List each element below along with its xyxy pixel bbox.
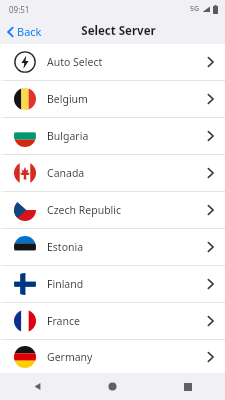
- other: Open France: [207, 315, 214, 327]
- button[interactable]: Back: [0, 373, 75, 400]
- button[interactable]: Home: [75, 373, 150, 400]
- other: Open Czech Republic: [207, 204, 214, 216]
- staticText: Canada: [47, 166, 207, 180]
- staticText: Belgium: [47, 92, 207, 106]
- staticText: Estonia: [47, 240, 207, 254]
- staticText: France: [47, 314, 207, 328]
- other: Open Bulgaria: [207, 130, 214, 142]
- other: Open Finland: [207, 278, 214, 290]
- other: Open Germany: [207, 351, 214, 363]
- button[interactable]: Recent apps: [150, 373, 225, 400]
- button[interactable]: Auto Select: [0, 44, 225, 80]
- other: Open Canada: [207, 167, 214, 179]
- staticText: Select Server: [81, 23, 156, 39]
- button[interactable]: Czech Republic: [0, 192, 225, 228]
- button[interactable]: Back: [0, 21, 48, 42]
- button[interactable]: France: [0, 303, 225, 339]
- staticText: Auto Select: [47, 55, 207, 69]
- staticText: Czech Republic: [47, 203, 207, 217]
- staticText: 5G: [190, 4, 200, 14]
- button[interactable]: Estonia: [0, 229, 225, 265]
- other: Open Auto Select: [207, 56, 214, 68]
- other: Open Belgium: [207, 93, 214, 105]
- staticText: Germany: [47, 350, 207, 364]
- staticText: 09:51: [9, 4, 30, 15]
- other: Open Estonia: [207, 241, 214, 253]
- staticText: Back: [17, 24, 42, 39]
- button[interactable]: Canada: [0, 155, 225, 191]
- button[interactable]: Bulgaria: [0, 118, 225, 154]
- button[interactable]: Belgium: [0, 81, 225, 117]
- button[interactable]: Finland: [0, 266, 225, 302]
- staticText: Bulgaria: [47, 129, 207, 143]
- button[interactable]: Germany: [0, 340, 225, 373]
- staticText: Finland: [47, 277, 207, 291]
